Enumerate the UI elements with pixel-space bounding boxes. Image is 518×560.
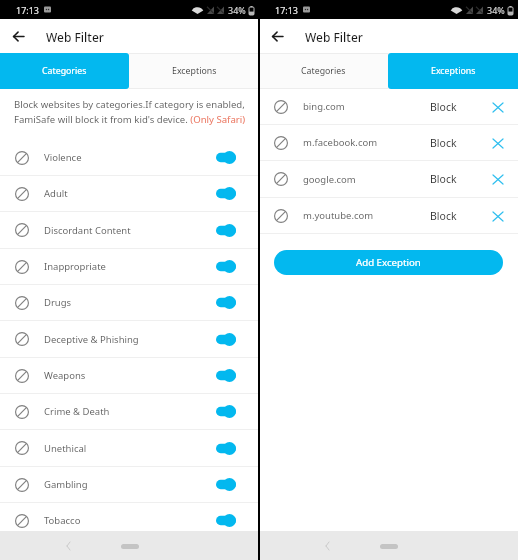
button[interactable]: Inappropriate [0, 249, 259, 284]
staticText: Unethical [44, 442, 87, 455]
staticText: 34% [487, 4, 505, 16]
staticText: Block websites by categories.If category… [14, 98, 251, 125]
button[interactable]: Back [259, 19, 295, 53]
staticText: Categories [42, 65, 87, 77]
button[interactable]: Weapons [0, 358, 259, 393]
staticText: Violence [44, 151, 82, 164]
staticText: m.youtube.com [303, 209, 374, 222]
staticText: Crime & Death [44, 405, 110, 418]
staticText: 17:13 [275, 4, 299, 16]
button[interactable]: Back [317, 536, 337, 556]
button[interactable]: Gambling [0, 467, 259, 502]
button[interactable]: Exceptions [388, 53, 518, 89]
staticText: Web Filter [305, 29, 363, 45]
staticText: Gambling [44, 478, 88, 491]
button[interactable]: Remove exception [489, 134, 507, 152]
staticText: m.facebook.com [303, 136, 378, 149]
button[interactable]: Unethical [0, 430, 259, 466]
button[interactable]: Home [115, 537, 145, 555]
button[interactable]: Add Exception [274, 250, 503, 275]
button[interactable]: google.com [259, 161, 518, 197]
staticText: Web Filter [46, 29, 104, 45]
staticText: Block [430, 209, 457, 223]
staticText: Adult [44, 187, 68, 200]
button[interactable]: Back [0, 19, 36, 53]
button[interactable]: Violence [0, 140, 259, 175]
button[interactable]: Exceptions [129, 53, 259, 89]
button[interactable]: Deceptive & Phishing [0, 321, 259, 357]
button[interactable]: Categories [0, 53, 129, 89]
staticText: Weapons [44, 369, 86, 382]
staticText: Tobacco [44, 514, 81, 527]
button[interactable]: Drugs [0, 285, 259, 320]
staticText: Block [430, 100, 457, 114]
button[interactable]: m.facebook.com [259, 125, 518, 160]
staticText: Discordant Content [44, 224, 131, 237]
staticText: bing.com [303, 100, 345, 113]
staticText: Exceptions [431, 65, 476, 77]
staticText: Exceptions [172, 65, 217, 77]
button[interactable]: Back [58, 536, 78, 556]
staticText: Drugs [44, 296, 72, 309]
staticText: Categories [301, 65, 346, 77]
staticText: 34% [228, 4, 246, 16]
button[interactable]: Discordant Content [0, 212, 259, 248]
button[interactable]: Categories [259, 53, 388, 89]
staticText: Deceptive & Phishing [44, 333, 139, 346]
button[interactable]: Remove exception [489, 98, 507, 116]
staticText: Block [430, 172, 457, 186]
button[interactable]: Adult [0, 176, 259, 211]
button[interactable]: Remove exception [489, 170, 507, 188]
button[interactable]: Crime & Death [0, 394, 259, 429]
button[interactable]: m.youtube.com [259, 198, 518, 233]
staticText: Inappropriate [44, 260, 106, 273]
staticText: 17:13 [16, 4, 40, 16]
button[interactable]: bing.com [259, 89, 518, 124]
staticText: Block [430, 136, 457, 150]
staticText: google.com [303, 173, 356, 186]
staticText: Add Exception [356, 256, 421, 269]
button[interactable]: Home [374, 537, 404, 555]
button[interactable]: Tobacco [0, 503, 259, 538]
button[interactable]: Remove exception [489, 207, 507, 225]
